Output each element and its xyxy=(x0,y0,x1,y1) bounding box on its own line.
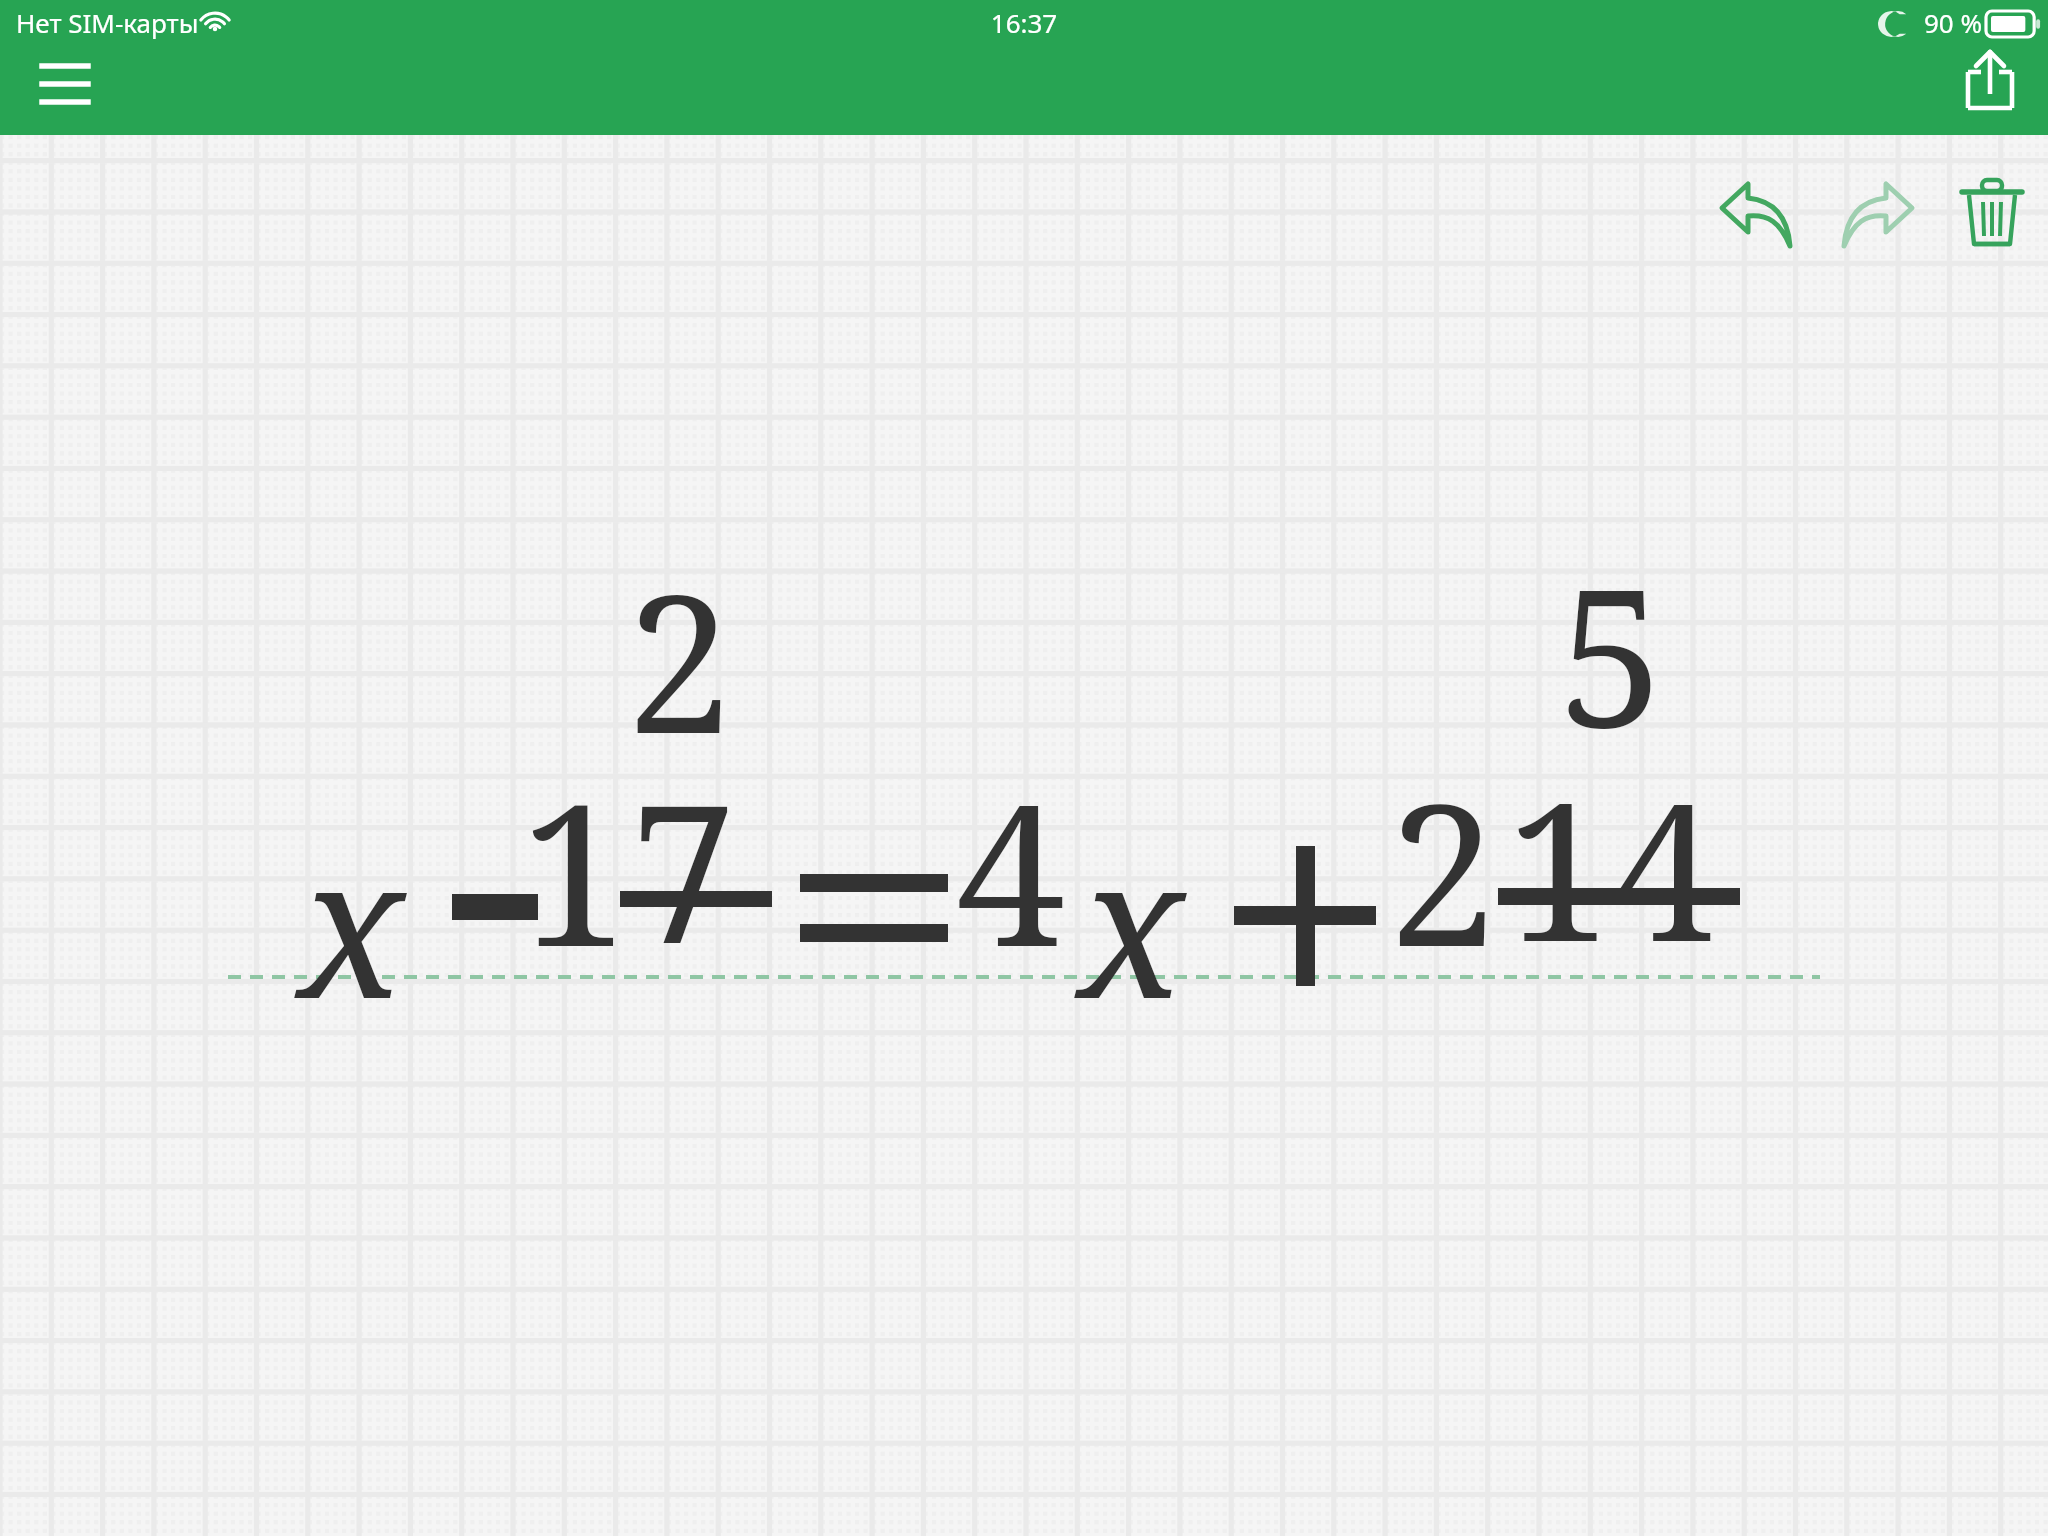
button[interactable]: Redo xyxy=(1832,170,1922,260)
staticText: 7 xyxy=(630,740,737,999)
staticText: x xyxy=(298,790,405,1056)
staticText: 2 xyxy=(626,530,733,789)
staticText: 90 % xyxy=(1924,5,1983,40)
staticText: 4 xyxy=(956,738,1066,1004)
staticText: 2 xyxy=(1388,738,1498,1004)
button[interactable]: Share xyxy=(1944,36,2032,124)
staticText: 16:37 xyxy=(0,5,2048,40)
staticText: 1 xyxy=(520,738,630,1004)
staticText: Нет SIM-карты xyxy=(16,5,199,40)
button[interactable]: Delete xyxy=(1948,168,2038,258)
staticText: 14 xyxy=(1506,738,1719,997)
staticText: 5 xyxy=(1558,524,1665,783)
other: Wi-Fi xyxy=(200,10,230,34)
button[interactable]: Menu xyxy=(10,42,100,122)
staticText: x xyxy=(1078,790,1185,1056)
button[interactable]: Undo xyxy=(1712,170,1802,260)
